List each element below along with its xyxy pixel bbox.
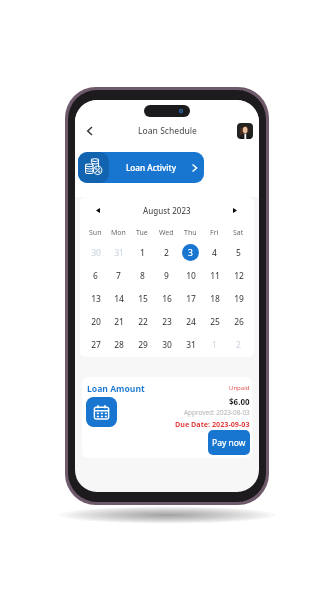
staticText: 13: [91, 293, 101, 305]
button[interactable]: 14: [110, 290, 127, 307]
button[interactable]: 10: [182, 267, 199, 284]
staticText: Wed: [159, 228, 174, 238]
staticText: Loan Amount: [87, 383, 145, 395]
button[interactable]: 7: [110, 267, 127, 284]
staticText: 1: [212, 339, 217, 351]
staticText: Pay now: [212, 437, 246, 449]
staticText: 27: [91, 339, 101, 351]
button[interactable]: 28: [110, 336, 127, 353]
button[interactable]: 6: [87, 267, 104, 284]
staticText: 17: [186, 293, 196, 305]
button[interactable]: 13: [87, 290, 104, 307]
staticText: Loan Activity: [126, 162, 177, 173]
button[interactable]: 12: [230, 267, 247, 284]
staticText: 23: [162, 316, 172, 328]
staticText: Thu: [184, 228, 197, 238]
button[interactable]: 2: [158, 244, 175, 261]
staticText: 5: [236, 247, 241, 259]
button[interactable]: Previous month: [92, 204, 104, 216]
staticText: 31: [114, 247, 124, 259]
button[interactable]: 19: [230, 290, 247, 307]
staticText: $6.00: [229, 396, 250, 407]
staticText: 20: [91, 316, 101, 328]
staticText: 21: [114, 316, 124, 328]
button[interactable]: 2: [230, 336, 247, 353]
button[interactable]: 16: [158, 290, 175, 307]
button[interactable]: 3: [182, 244, 199, 261]
button[interactable]: 9: [158, 267, 175, 284]
button[interactable]: 30: [158, 336, 175, 353]
staticText: 28: [114, 339, 124, 351]
button[interactable]: Next month: [229, 204, 241, 216]
staticText: 11: [210, 270, 220, 282]
staticText: 19: [234, 293, 244, 305]
button[interactable]: 11: [206, 267, 223, 284]
button[interactable]: 27: [87, 336, 104, 353]
staticText: 14: [114, 293, 124, 305]
button[interactable]: 5: [230, 244, 247, 261]
button[interactable]: 21: [110, 313, 127, 330]
staticText: 7: [116, 270, 121, 282]
button[interactable]: Pay now: [208, 430, 250, 455]
button[interactable]: 18: [206, 290, 223, 307]
staticText: Tue: [136, 228, 148, 238]
button[interactable]: 1: [134, 244, 151, 261]
staticText: 15: [138, 293, 148, 305]
button[interactable]: 29: [134, 336, 151, 353]
button[interactable]: 25: [206, 313, 223, 330]
staticText: 31: [186, 339, 196, 351]
button[interactable]: 8: [134, 267, 151, 284]
staticText: 29: [138, 339, 148, 351]
button[interactable]: 31: [182, 336, 199, 353]
staticText: 2: [164, 247, 169, 259]
staticText: Fri: [210, 228, 219, 238]
button[interactable]: Back: [81, 123, 97, 139]
button[interactable]: 31: [110, 244, 127, 261]
staticText: 9: [164, 270, 169, 282]
button[interactable]: Profile: [237, 123, 253, 139]
button[interactable]: 24: [182, 313, 199, 330]
staticText: Sun: [89, 228, 102, 238]
staticText: 10: [186, 270, 196, 282]
staticText: Mon: [111, 228, 126, 238]
button[interactable]: 20: [87, 313, 104, 330]
staticText: Sat: [233, 228, 244, 238]
staticText: 30: [91, 247, 101, 259]
button[interactable]: 4: [206, 244, 223, 261]
button[interactable]: 22: [134, 313, 151, 330]
button[interactable]: 23: [158, 313, 175, 330]
staticText: 26: [234, 316, 244, 328]
staticText: Approved: 2023-08-03: [184, 408, 250, 417]
staticText: 12: [234, 270, 244, 282]
button[interactable]: Loan Amount: [82, 377, 252, 458]
button[interactable]: 17: [182, 290, 199, 307]
button[interactable]: Loan Activity: [78, 152, 204, 183]
staticText: Unpaid: [229, 384, 250, 392]
staticText: 24: [186, 316, 196, 328]
staticText: 18: [210, 293, 220, 305]
staticText: 6: [93, 270, 98, 282]
staticText: 25: [210, 316, 220, 328]
staticText: 22: [138, 316, 148, 328]
staticText: 2: [236, 339, 241, 351]
staticText: Due Date:: [175, 419, 212, 429]
button[interactable]: 1: [206, 336, 223, 353]
staticText: 30: [162, 339, 172, 351]
staticText: 16: [162, 293, 172, 305]
staticText: August 2023: [143, 205, 191, 216]
staticText: Loan Schedule: [138, 125, 197, 137]
button[interactable]: 30: [87, 244, 104, 261]
button[interactable]: 15: [134, 290, 151, 307]
staticText: 1: [140, 247, 145, 259]
staticText: 2023-09-03: [212, 419, 250, 429]
staticText: 8: [140, 270, 145, 282]
staticText: 4: [212, 247, 217, 259]
button[interactable]: 26: [230, 313, 247, 330]
staticText: 3: [188, 247, 193, 259]
